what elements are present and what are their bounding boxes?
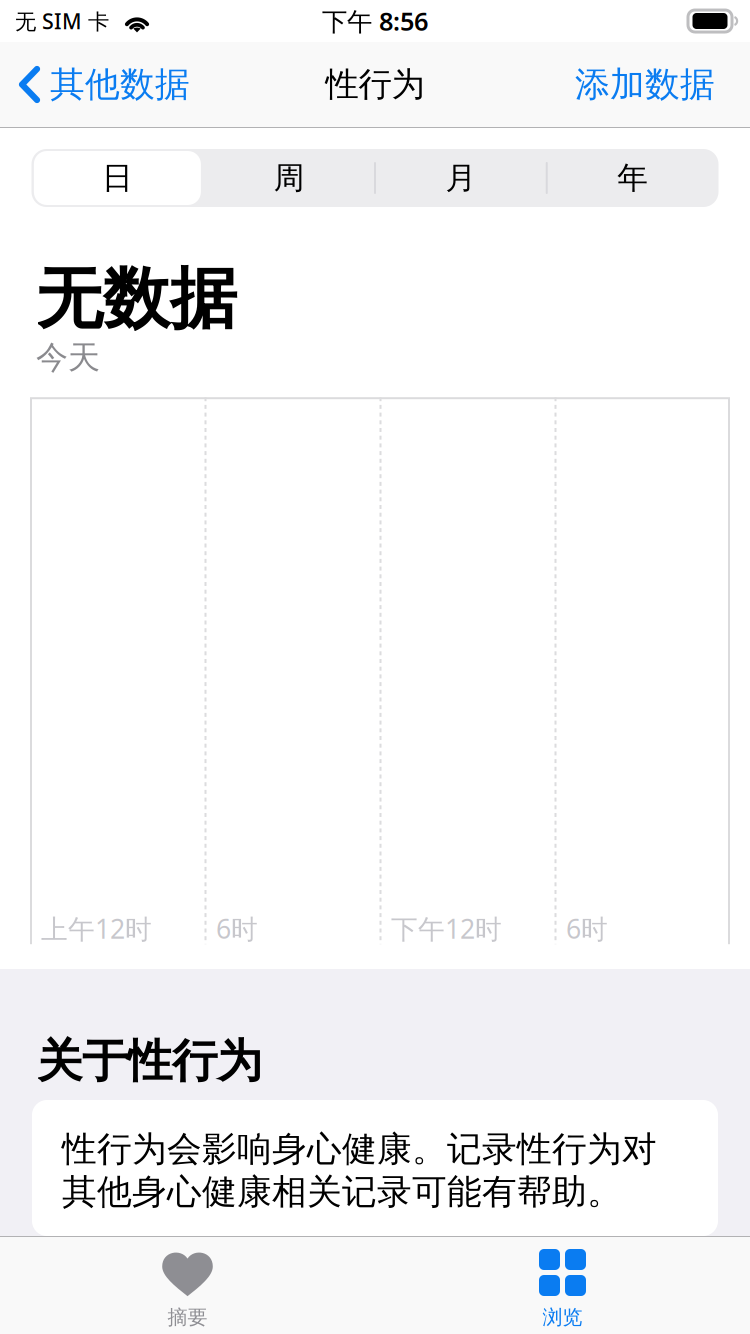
staticText: 月 bbox=[445, 159, 476, 197]
staticText: 添加数据 bbox=[575, 63, 715, 106]
button[interactable]: 周 bbox=[203, 149, 375, 207]
staticText: 性行为会影响身心健康。记录性行为对其他身心健康相关记录可能有帮助。 bbox=[62, 1128, 657, 1213]
staticText: 日 bbox=[102, 159, 133, 197]
button[interactable]: 添加数据 bbox=[575, 51, 750, 118]
staticText: 下午12时 bbox=[391, 911, 502, 946]
button[interactable]: 其他数据 bbox=[0, 51, 190, 118]
button[interactable]: 浏览 bbox=[375, 1237, 750, 1334]
staticText: 无数据 bbox=[36, 258, 237, 340]
staticText: 性行为 bbox=[325, 64, 424, 105]
button[interactable]: 月 bbox=[375, 149, 547, 207]
staticText: 周 bbox=[274, 159, 305, 197]
staticText: 今天 bbox=[36, 338, 100, 377]
staticText: 6时 bbox=[566, 911, 608, 946]
staticText: 其他数据 bbox=[50, 63, 190, 106]
button[interactable]: 年 bbox=[547, 149, 719, 207]
button[interactable]: 日 bbox=[31, 149, 203, 207]
staticText: 年 bbox=[617, 159, 648, 197]
staticText: 无 SIM 卡 bbox=[15, 7, 109, 35]
staticText: 浏览 bbox=[542, 1305, 582, 1330]
staticText: 下午 8:56 bbox=[322, 4, 428, 38]
staticText: 摘要 bbox=[167, 1305, 207, 1330]
staticText: 关于性行为 bbox=[37, 1033, 262, 1089]
button[interactable]: 摘要 bbox=[0, 1237, 375, 1334]
staticText: 6时 bbox=[216, 911, 258, 946]
staticText: 上午12时 bbox=[41, 911, 152, 946]
